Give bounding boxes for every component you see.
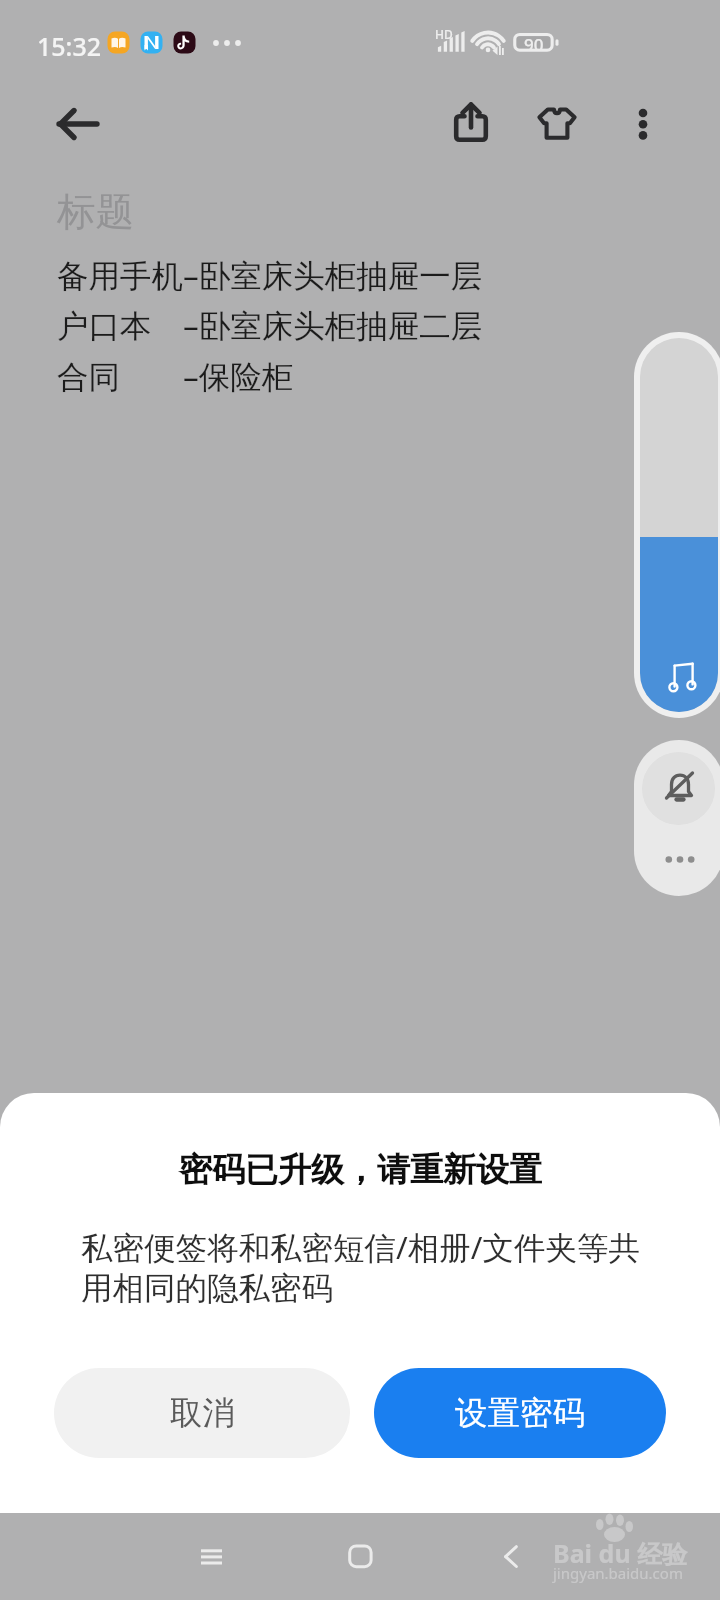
staticText: 私密便签将和私密短信/相册/文件夹等共 用相同的隐私密码: [81, 1225, 640, 1308]
staticText: 15:32: [37, 29, 102, 63]
staticText: 备用手机–卧室床头柜抽屉一层 户口本 –卧室床头柜抽屉二层 合同 –保险柜: [57, 253, 483, 398]
button[interactable]: 设置密码: [374, 1368, 666, 1458]
button[interactable]: Back: [482, 1521, 542, 1581]
staticText: Bai du 经验: [553, 1536, 688, 1570]
staticText: jingyan.baidu.com: [553, 1563, 683, 1583]
button[interactable]: Share: [435, 88, 507, 160]
button[interactable]: Theme: [521, 88, 593, 160]
button[interactable]: Media volume: [634, 332, 720, 718]
button[interactable]: More options: [607, 88, 679, 160]
staticText: HD: [435, 26, 453, 42]
staticText: 取消: [170, 1393, 235, 1434]
staticText: 设置密码: [455, 1393, 585, 1434]
button[interactable]: Back: [41, 88, 113, 160]
staticText: 标题: [57, 188, 134, 237]
button[interactable]: 取消: [54, 1368, 350, 1458]
button[interactable]: Mute: [642, 752, 715, 825]
button[interactable]: Recent apps: [181, 1521, 241, 1581]
button[interactable]: Home: [330, 1521, 390, 1581]
staticText: 密码已升级，请重新设置: [179, 1149, 542, 1191]
staticText: 90: [524, 33, 544, 56]
